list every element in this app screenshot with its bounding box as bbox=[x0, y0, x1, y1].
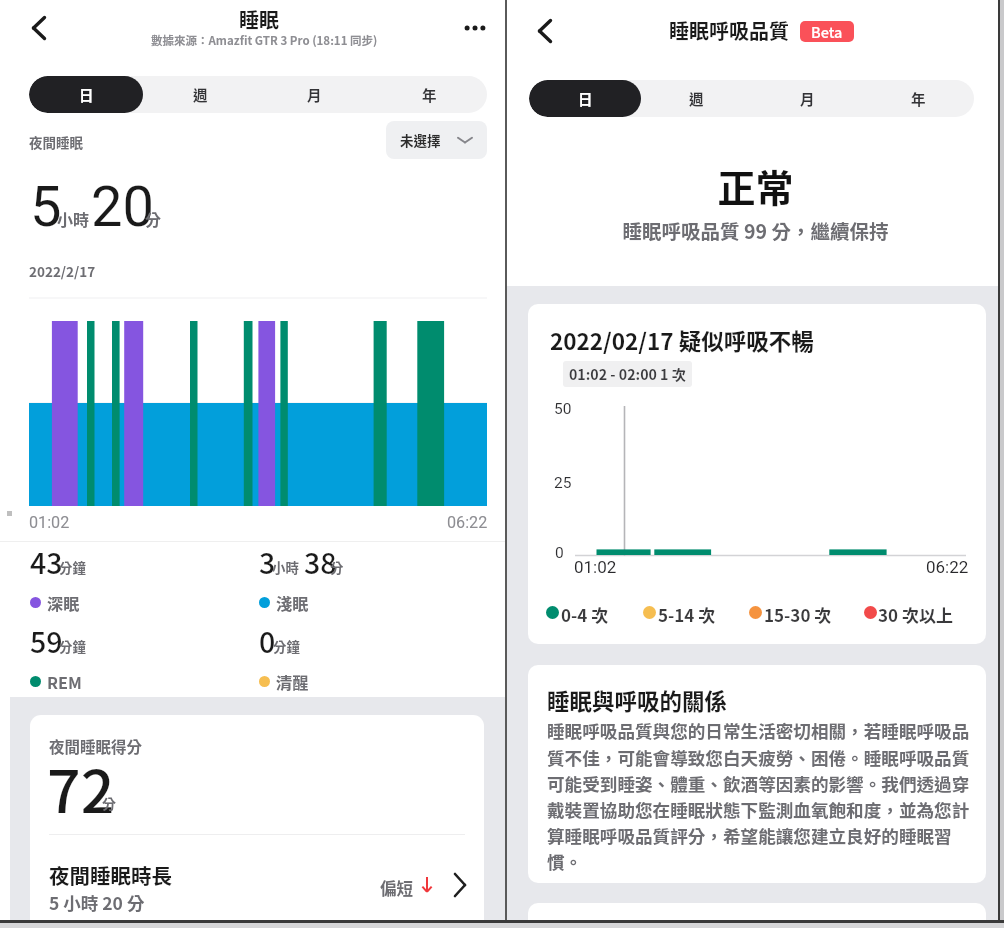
staticText: 睡眠 bbox=[239, 5, 279, 34]
staticText: 0-4 次 bbox=[561, 602, 609, 627]
button[interactable]: Back bbox=[528, 14, 562, 48]
staticText: 5-14 次 bbox=[658, 602, 716, 627]
button[interactable]: Beta bbox=[800, 21, 854, 42]
staticText: 夜間睡眠時長 bbox=[49, 860, 172, 890]
staticText: 15-30 次 bbox=[764, 602, 832, 627]
button[interactable]: 週 bbox=[641, 80, 752, 117]
staticText: 數據來源：Amazfit GTR 3 Pro (18:11 同步) bbox=[151, 32, 378, 49]
staticText: 夜間睡眠 bbox=[29, 132, 83, 152]
staticText: 0 bbox=[259, 620, 276, 661]
staticText: 月 bbox=[307, 84, 322, 105]
staticText: 3 bbox=[259, 541, 276, 582]
staticText: 未選擇 bbox=[400, 130, 441, 150]
staticText: 偏短 bbox=[380, 876, 413, 900]
staticText: 72 bbox=[47, 745, 115, 830]
button[interactable]: Open sleep duration detail bbox=[446, 870, 476, 900]
staticText: 2022/2/17 bbox=[29, 261, 96, 281]
staticText: 分鐘 bbox=[59, 636, 86, 655]
staticText: 分 bbox=[102, 793, 116, 813]
staticText: 分鐘 bbox=[59, 557, 86, 576]
staticText: 06:22 bbox=[926, 557, 969, 577]
staticText: 43 bbox=[30, 541, 63, 582]
staticText: 睡眠呼吸品質 99 分，繼續保持 bbox=[507, 216, 1004, 244]
staticText: 0 bbox=[555, 544, 564, 562]
staticText: REM bbox=[47, 670, 82, 693]
staticText: Beta bbox=[811, 21, 843, 42]
staticText: 小時 bbox=[272, 557, 299, 576]
staticText: 日 bbox=[79, 84, 94, 105]
staticText: 01:02 bbox=[29, 513, 70, 532]
button[interactable]: Back bbox=[22, 11, 56, 45]
staticText: 分 bbox=[145, 207, 162, 230]
staticText: 淺眠 bbox=[276, 591, 309, 614]
staticText: 5 bbox=[30, 174, 62, 240]
button[interactable]: 週 bbox=[143, 76, 257, 113]
button[interactable]: 月 bbox=[257, 76, 372, 113]
staticText: 5 小時 20 分 bbox=[49, 890, 145, 915]
button[interactable]: More options bbox=[459, 12, 491, 44]
staticText: 正常 bbox=[507, 158, 1004, 213]
staticText: 小時 bbox=[57, 207, 90, 230]
staticText: 01:02 bbox=[574, 557, 617, 577]
button[interactable]: 月 bbox=[752, 80, 863, 117]
staticText: 清醒 bbox=[276, 670, 309, 693]
staticText: 59 bbox=[30, 620, 63, 661]
staticText: 睡眠呼吸品質 bbox=[669, 16, 789, 45]
button[interactable]: 日 bbox=[529, 80, 641, 117]
button[interactable]: 未選擇 bbox=[386, 121, 487, 159]
button[interactable]: 日 bbox=[29, 76, 143, 113]
staticText: 30 次以上 bbox=[878, 602, 953, 627]
button[interactable]: 年 bbox=[372, 76, 487, 113]
staticText: 睡眠與呼吸的關係 bbox=[547, 684, 728, 717]
staticText: 睡眠呼吸品質與您的日常生活密切相關，若睡眠呼吸品質不佳，可能會導致您白天疲勞、困… bbox=[547, 718, 971, 874]
staticText: 週 bbox=[193, 84, 208, 105]
staticText: 分鐘 bbox=[273, 636, 300, 655]
staticText: 夜間睡眠得分 bbox=[49, 735, 143, 757]
staticText: 06:22 bbox=[447, 513, 488, 532]
staticText: 01:02 - 02:00 1 次 bbox=[569, 364, 686, 385]
staticText: 38 bbox=[304, 541, 337, 582]
staticText: 年 bbox=[911, 88, 926, 109]
staticText: 年 bbox=[422, 84, 437, 105]
staticText: 20 bbox=[91, 174, 154, 240]
staticText: 深眠 bbox=[47, 591, 80, 614]
staticText: 週 bbox=[689, 88, 704, 109]
staticText: 日 bbox=[578, 88, 593, 109]
staticText: 25 bbox=[554, 474, 572, 492]
button[interactable]: 年 bbox=[863, 80, 974, 117]
staticText: 2022/02/17 疑似呼吸不暢 bbox=[550, 324, 814, 357]
staticText: 分 bbox=[330, 557, 344, 576]
button[interactable]: 夜間睡眠得分 bbox=[30, 715, 484, 928]
staticText: 50 bbox=[554, 400, 572, 418]
staticText: 月 bbox=[800, 88, 815, 109]
